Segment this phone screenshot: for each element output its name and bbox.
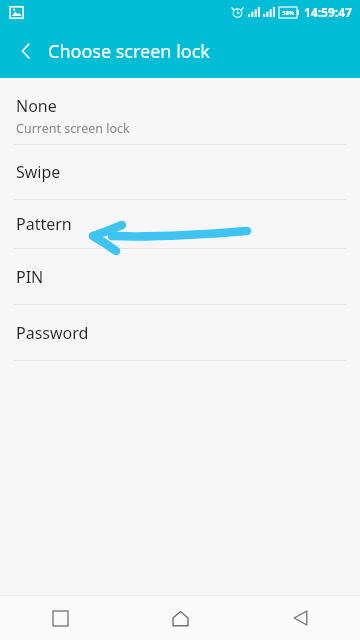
staticText: 14:59:47 xyxy=(304,4,352,20)
staticText: Pattern xyxy=(16,213,72,235)
staticText: Choose screen lock xyxy=(48,39,210,64)
staticText: Current screen lock xyxy=(16,120,130,137)
staticText: PIN xyxy=(16,266,44,288)
button[interactable]: Password xyxy=(0,305,360,360)
button[interactable]: Recents xyxy=(0,596,120,640)
button[interactable]: Pattern xyxy=(0,200,360,248)
button[interactable]: Back xyxy=(6,31,46,71)
button[interactable]: Back xyxy=(240,596,360,640)
staticText: Swipe xyxy=(16,161,61,183)
staticText: 38% xyxy=(282,9,295,17)
button[interactable]: PIN xyxy=(0,249,360,304)
button[interactable]: Swipe xyxy=(0,145,360,199)
staticText: Password xyxy=(16,322,89,344)
staticText: None xyxy=(16,95,57,117)
button[interactable]: None xyxy=(0,88,360,144)
button[interactable]: Home xyxy=(120,596,240,640)
